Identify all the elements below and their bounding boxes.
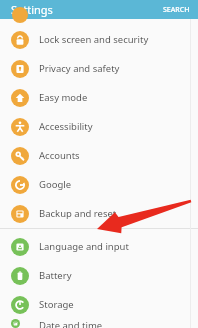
button[interactable]: Google (0, 170, 198, 199)
staticText: SEARCH (163, 5, 190, 15)
button[interactable]: Lock screen and security (0, 25, 198, 54)
staticText: Language and input (39, 240, 129, 253)
staticText: Settings (11, 2, 53, 17)
button[interactable]: Backup and reset (0, 199, 198, 228)
staticText: Date and time (39, 319, 103, 328)
button[interactable]: Easy mode (0, 83, 198, 112)
button[interactable]: Language and input (0, 232, 198, 261)
staticText: Storage (39, 298, 74, 311)
staticText: Easy mode (39, 91, 88, 104)
button[interactable]: Accessibility (0, 112, 198, 141)
staticText: Google (39, 178, 72, 191)
button[interactable]: Storage (0, 290, 198, 319)
staticText: Accessibility (39, 120, 93, 133)
button[interactable] (0, 19, 198, 25)
staticText: Lock screen and security (39, 33, 149, 46)
button[interactable]: SEARCH (155, 2, 198, 18)
staticText: Battery (39, 269, 72, 282)
button[interactable]: Privacy and safety (0, 54, 198, 83)
staticText: Accounts (39, 149, 80, 162)
staticText: Privacy and safety (39, 62, 120, 75)
button[interactable]: Date and time (0, 319, 198, 328)
staticText: Backup and reset (39, 207, 117, 220)
button[interactable]: Accounts (0, 141, 198, 170)
button[interactable]: Battery (0, 261, 198, 290)
